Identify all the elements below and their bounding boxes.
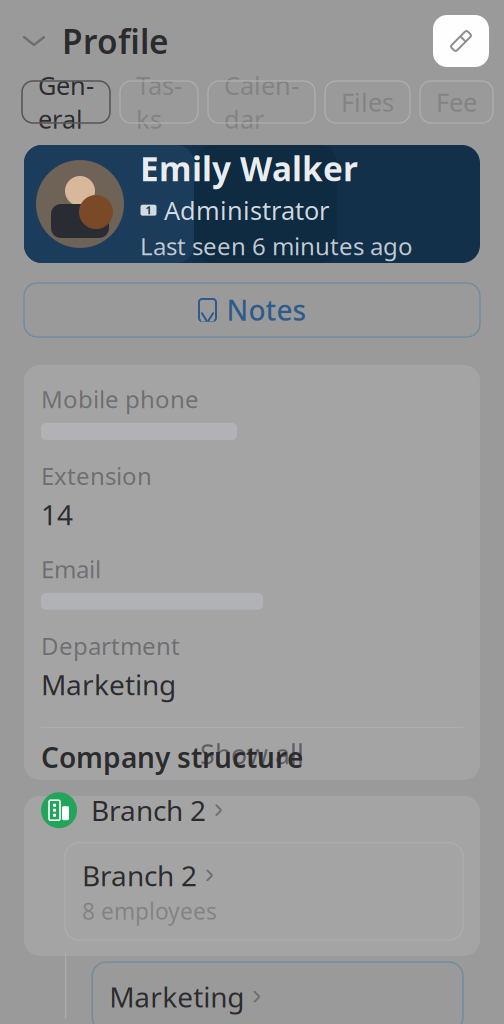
staticText: Department [41,630,180,662]
staticText: Extension [41,460,152,492]
button[interactable]: Fee [420,81,493,123]
staticText: Mobile phone [41,383,199,415]
staticText: Calendar [224,68,299,136]
staticText: Show all [200,736,304,771]
staticText: General [38,68,94,136]
button[interactable]: Tasks [120,81,198,123]
button[interactable]: Collapse [12,19,56,63]
staticText: 1 [145,203,151,217]
staticText: Emily Walker [140,146,358,190]
button[interactable]: Marketing [66,940,480,1024]
button[interactable]: Notes [0,263,504,337]
button[interactable]: Branch 2 [24,829,480,940]
staticText: Tasks [136,68,182,136]
staticText: Marketing [109,978,244,1015]
staticText: Branch 2 [82,857,197,894]
staticText: Company structure [41,738,303,776]
staticText: Email [41,553,101,585]
button[interactable]: Files [325,81,410,123]
button[interactable]: Show all [41,728,463,780]
button[interactable]: General [22,81,110,123]
staticText: Fee [436,85,477,119]
button[interactable]: Calendar [208,81,315,123]
button[interactable]: Emily Walker [0,123,504,263]
staticText: 8 employees [82,896,217,926]
staticText: Profile [62,19,169,63]
staticText: Files [341,85,394,119]
button[interactable]: Branch 2 [24,776,480,829]
staticText: Branch 2 [91,792,206,829]
staticText: Marketing [41,666,176,703]
staticText: Last seen 6 minutes ago [140,230,413,262]
staticText: Administrator [164,193,329,227]
staticText: Notes [226,291,306,329]
button[interactable]: Edit [433,15,489,67]
staticText: 14 [41,496,73,533]
